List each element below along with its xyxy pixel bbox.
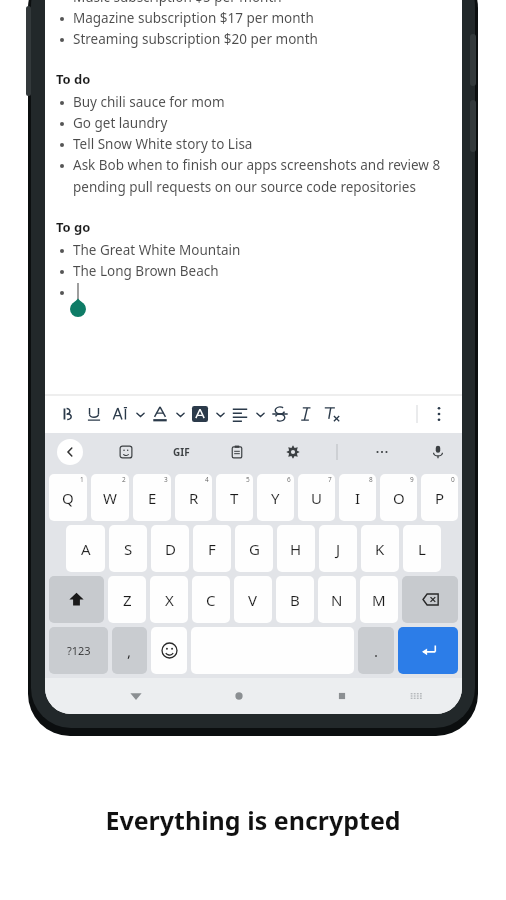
button[interactable]: Expand — [213, 401, 227, 427]
staticText: H — [290, 539, 302, 559]
button[interactable]: R — [175, 474, 212, 521]
staticText: S — [124, 539, 133, 559]
button[interactable]: U — [298, 474, 335, 521]
button[interactable]: Back — [57, 439, 83, 465]
staticText: D — [165, 539, 176, 559]
staticText: U — [311, 488, 322, 508]
button[interactable]: Bold — [55, 401, 81, 427]
button[interactable]: GIF — [169, 441, 194, 463]
button[interactable]: S — [109, 525, 147, 572]
staticText: 0 — [451, 475, 455, 484]
button[interactable]: D — [151, 525, 189, 572]
button[interactable]: Text size — [107, 401, 133, 427]
staticText: 5 — [246, 475, 250, 484]
staticText: Music subscription $5 per month — [73, 0, 282, 6]
button[interactable]: . — [358, 627, 394, 674]
button[interactable]: M — [360, 576, 398, 623]
button[interactable]: Enter — [398, 627, 458, 674]
button[interactable]: Q — [49, 474, 87, 521]
button[interactable]: More options — [426, 401, 452, 427]
staticText: A — [81, 539, 91, 559]
staticText: T — [230, 488, 239, 508]
staticText: 2 — [122, 475, 126, 484]
button[interactable]: J — [319, 525, 357, 572]
staticText: M — [372, 590, 386, 610]
staticText: L — [418, 539, 426, 559]
button[interactable]: G — [235, 525, 273, 572]
button[interactable]: Settings — [281, 440, 305, 464]
button[interactable]: ?123 — [49, 627, 108, 674]
staticText: Y — [271, 488, 280, 508]
button[interactable]: Stickers — [114, 440, 138, 464]
staticText: K — [375, 539, 385, 559]
button[interactable]: X — [150, 576, 188, 623]
button[interactable]: T — [216, 474, 253, 521]
button[interactable]: Clipboard — [225, 440, 249, 464]
button[interactable]: L — [403, 525, 441, 572]
button[interactable]: Y — [257, 474, 294, 521]
staticText: Magazine subscription $17 per month — [73, 9, 314, 27]
staticText: Ask Bob when to finish our apps screensh… — [73, 156, 448, 196]
staticText: To do — [56, 70, 91, 88]
button[interactable]: Strikethrough — [267, 401, 293, 427]
button[interactable]: Align — [227, 401, 253, 427]
staticText: X — [165, 590, 174, 610]
button[interactable]: Expand — [133, 401, 147, 427]
staticText: 1 — [80, 475, 84, 484]
button[interactable]: Shift — [49, 576, 104, 623]
button[interactable]: Highlight — [187, 401, 213, 427]
staticText: Everything is encrypted — [0, 803, 506, 837]
staticText: To go — [56, 218, 91, 236]
staticText: , — [127, 641, 132, 661]
button[interactable]: , — [112, 627, 147, 674]
staticText: ?123 — [67, 643, 91, 658]
button[interactable]: Switch keyboard — [401, 681, 431, 711]
button[interactable]: O — [380, 474, 417, 521]
staticText: G — [249, 539, 260, 559]
button[interactable]: Clear formatting — [319, 401, 345, 427]
button[interactable]: H — [277, 525, 315, 572]
staticText: 9 — [410, 475, 414, 484]
button[interactable]: Text color — [147, 401, 173, 427]
button[interactable]: C — [192, 576, 230, 623]
button[interactable]: Backspace — [402, 576, 458, 623]
button[interactable]: P — [421, 474, 458, 521]
button[interactable]: B — [276, 576, 314, 623]
button[interactable]: Expand — [173, 401, 187, 427]
button[interactable]: Voice input — [426, 440, 450, 464]
staticText: . — [374, 641, 379, 661]
button[interactable]: Emoji — [151, 627, 187, 674]
button[interactable]: Recents — [327, 681, 357, 711]
button[interactable]: W — [91, 474, 129, 521]
staticText: J — [336, 539, 341, 559]
button[interactable]: V — [234, 576, 272, 623]
button[interactable]: Home — [224, 681, 254, 711]
button[interactable]: Expand — [253, 401, 267, 427]
staticText: R — [189, 488, 199, 508]
staticText: V — [248, 590, 258, 610]
button[interactable]: More — [370, 440, 394, 464]
button[interactable]: Z — [108, 576, 146, 623]
button[interactable]: Italic — [293, 401, 319, 427]
button[interactable]: E — [133, 474, 171, 521]
staticText: Buy chili sauce for mom — [73, 93, 225, 111]
button[interactable]: A — [66, 525, 105, 572]
staticText: W — [103, 488, 117, 508]
staticText: O — [393, 488, 405, 508]
staticText: N — [331, 590, 343, 610]
staticText: Streaming subscription $20 per month — [73, 30, 318, 48]
button[interactable]: F — [193, 525, 231, 572]
staticText: 4 — [205, 475, 209, 484]
staticText: The Long Brown Beach — [73, 262, 219, 280]
staticText: Z — [123, 590, 132, 610]
staticText: P — [435, 488, 445, 508]
staticText: C — [206, 590, 216, 610]
button[interactable]: Back — [121, 681, 151, 711]
staticText: 7 — [328, 475, 332, 484]
button[interactable]: N — [318, 576, 356, 623]
button[interactable]: K — [361, 525, 399, 572]
staticText: Go get laundry — [73, 114, 168, 132]
button[interactable]: I — [339, 474, 376, 521]
button[interactable]: Underline — [81, 401, 107, 427]
